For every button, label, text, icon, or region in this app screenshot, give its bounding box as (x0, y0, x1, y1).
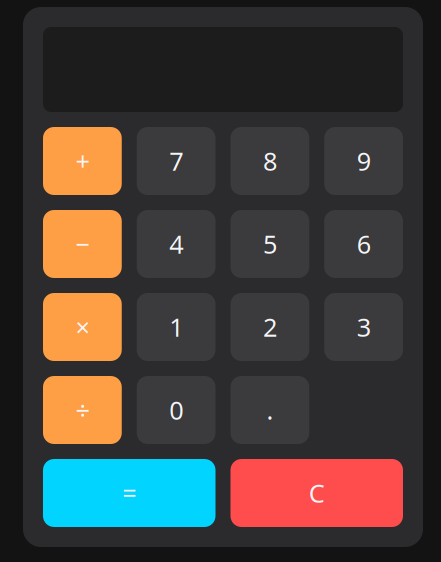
staticText: 5 (263, 227, 277, 261)
button[interactable]: Multiply (43, 293, 122, 361)
staticText: ÷ (75, 393, 89, 427)
staticText: 8 (263, 144, 277, 178)
button[interactable]: Eight (230, 127, 309, 195)
staticText: . (266, 393, 273, 427)
staticText: 9 (357, 144, 371, 178)
button[interactable]: Subtract (43, 210, 122, 278)
staticText: 4 (169, 227, 183, 261)
button[interactable]: Divide (43, 376, 122, 444)
button[interactable]: Four (137, 210, 216, 278)
button[interactable]: Decimal point (230, 376, 309, 444)
button[interactable]: Six (324, 210, 403, 278)
staticText: 2 (263, 310, 277, 344)
staticText: − (75, 227, 89, 261)
button[interactable]: Equals (43, 459, 215, 527)
staticText: + (75, 144, 89, 178)
staticText: = (122, 476, 136, 510)
staticText: 7 (169, 144, 183, 178)
staticText: 6 (357, 227, 371, 261)
button[interactable]: Add (43, 127, 122, 195)
button[interactable]: Nine (324, 127, 403, 195)
staticText: C (309, 476, 325, 510)
button[interactable]: Two (230, 293, 309, 361)
staticText: 1 (169, 310, 183, 344)
button[interactable]: Five (230, 210, 309, 278)
staticText: 3 (357, 310, 371, 344)
button[interactable]: Seven (137, 127, 216, 195)
staticText: 0 (169, 393, 183, 427)
button[interactable]: One (137, 293, 216, 361)
button[interactable]: Three (324, 293, 403, 361)
button[interactable]: Clear (230, 459, 403, 527)
button[interactable]: Zero (137, 376, 216, 444)
staticText: × (75, 310, 89, 344)
